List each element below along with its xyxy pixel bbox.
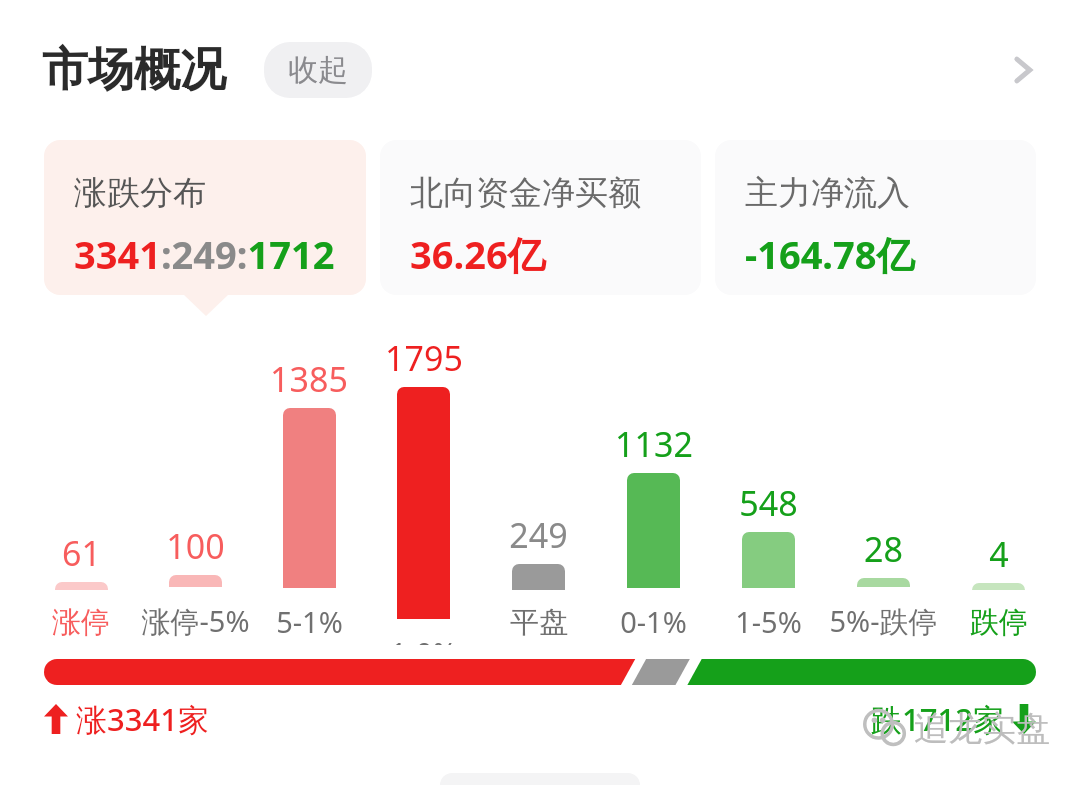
staticText: 跌1712家 bbox=[871, 698, 1004, 740]
staticText: 28 bbox=[864, 526, 903, 572]
staticText: 1-0% bbox=[390, 633, 457, 645]
staticText: 100 bbox=[166, 523, 225, 569]
staticText: 1132 bbox=[615, 421, 693, 467]
staticText: 0-1% bbox=[620, 602, 687, 641]
staticText: 5-1% bbox=[276, 602, 343, 641]
staticText: 61 bbox=[62, 530, 101, 576]
staticText: 249 bbox=[509, 512, 568, 558]
button[interactable]: 涨跌分布 bbox=[44, 140, 366, 295]
staticText: 1385 bbox=[270, 356, 348, 402]
staticText: 5%-跌停 bbox=[829, 601, 938, 641]
staticText: 4 bbox=[989, 531, 1009, 577]
staticText: 涨3341家 bbox=[76, 698, 209, 740]
staticText: 平盘 bbox=[510, 604, 568, 641]
button[interactable]: 主力净流入 bbox=[715, 140, 1036, 295]
staticText: 市场概况 bbox=[42, 41, 226, 99]
staticText: 548 bbox=[739, 480, 798, 526]
staticText: 追龙实盘 bbox=[914, 707, 1050, 750]
staticText: 北向资金净买额 bbox=[410, 172, 641, 214]
staticText: 涨跌分布 bbox=[74, 172, 206, 214]
staticText: 1795 bbox=[385, 335, 463, 381]
staticText: 涨停 bbox=[52, 604, 110, 641]
button[interactable]: More bbox=[992, 39, 1054, 101]
staticText: 收起 bbox=[288, 51, 348, 89]
staticText: 跌停 bbox=[970, 604, 1028, 641]
staticText: 涨停-5% bbox=[141, 601, 250, 641]
staticText: 主力净流入 bbox=[745, 172, 910, 214]
button[interactable]: 北向资金净买额 bbox=[380, 140, 701, 295]
button[interactable]: 收起 bbox=[264, 42, 372, 98]
staticText: -164.78亿 bbox=[745, 228, 915, 280]
staticText: 1-5% bbox=[735, 602, 802, 641]
staticText: 3341:249:1712 bbox=[74, 228, 335, 280]
staticText: 36.26亿 bbox=[410, 228, 546, 280]
